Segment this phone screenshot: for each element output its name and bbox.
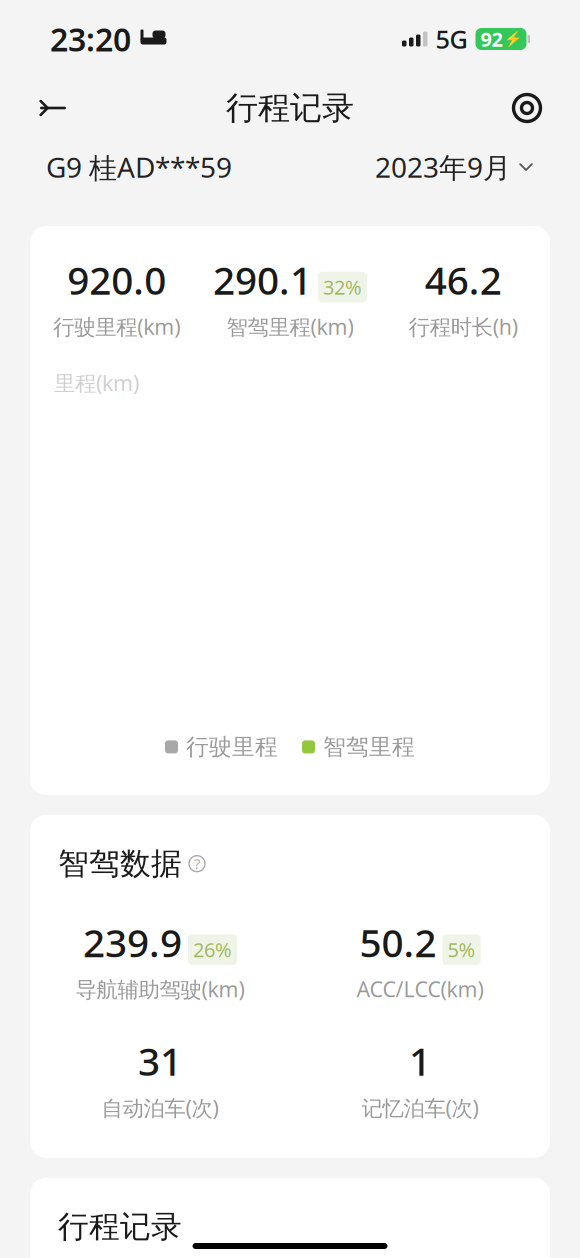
staticText: 导航辅助驾驶(km): [75, 975, 244, 1003]
staticText: 行驶里程(km): [53, 312, 180, 341]
staticText: 里程(km): [54, 369, 139, 397]
staticText: 智驾里程(km): [226, 312, 353, 341]
staticText: 31: [138, 1035, 182, 1086]
staticText: 自动泊车(次): [101, 1093, 218, 1122]
staticText: ACC/LCC(km): [356, 975, 483, 1003]
staticText: 智驾数据: [58, 845, 182, 882]
button[interactable]: Back: [30, 85, 76, 131]
button[interactable]: About smart driving data: [186, 853, 208, 875]
staticText: 2023年9月: [375, 148, 511, 186]
staticText: G9 桂AD***59: [46, 148, 232, 186]
staticText: 120: [87, 869, 120, 896]
staticText: 90: [98, 923, 120, 950]
button[interactable]: 2023年9月: [375, 148, 534, 186]
staticText: ?: [194, 854, 200, 873]
button[interactable]: Settings: [504, 85, 550, 131]
staticText: 行程记录: [58, 1208, 182, 1246]
staticText: ⚡: [503, 31, 521, 47]
staticText: 290.1: [213, 254, 312, 305]
staticText: 32%: [323, 274, 362, 300]
staticText: 60: [98, 978, 120, 1004]
staticText: 26%: [193, 936, 232, 963]
staticText: 920.0: [67, 254, 166, 305]
staticText: 09/05: [163, 1115, 214, 1142]
staticText: 行程时长(h): [409, 312, 518, 341]
staticText: 09/25: [438, 1115, 489, 1142]
staticText: 0: [109, 1087, 120, 1113]
staticText: 239.9: [83, 916, 182, 968]
staticText: 记忆泊车(次): [361, 1093, 478, 1122]
staticText: 50.2: [359, 916, 436, 968]
staticText: 行驶里程: [186, 733, 278, 761]
staticText: 92: [480, 26, 502, 52]
staticText: 5G: [435, 22, 467, 56]
staticText: 智驾里程: [323, 733, 415, 761]
staticText: 1: [409, 1035, 431, 1086]
staticText: 09/20: [370, 1115, 421, 1142]
staticText: 46.2: [425, 254, 502, 305]
staticText: 5%: [447, 936, 475, 963]
staticText: 行程记录: [226, 88, 354, 128]
staticText: 23:20: [50, 18, 131, 60]
